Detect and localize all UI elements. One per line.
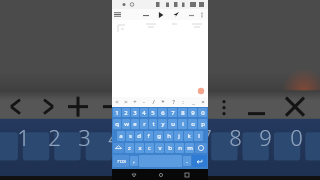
- button[interactable]: .: [183, 156, 191, 166]
- button[interactable]: Share: [170, 9, 181, 20]
- button[interactable]: >: [121, 97, 130, 107]
- staticText: ?: [172, 98, 175, 106]
- button[interactable]: Undo: [140, 9, 151, 20]
- button[interactable]: 8: [178, 108, 187, 117]
- staticText: 4: [108, 122, 121, 152]
- button[interactable]: r: [140, 119, 148, 129]
- button[interactable]: 6: [158, 108, 167, 117]
- staticText: s: [129, 132, 132, 140]
- button[interactable]: u: [168, 119, 177, 129]
- button[interactable]: *: [158, 97, 168, 107]
- button[interactable]: 7: [168, 108, 177, 117]
- button[interactable]: d: [135, 131, 143, 141]
- button[interactable]: i: [178, 119, 187, 129]
- staticText: 8: [229, 122, 242, 152]
- button[interactable]: l: [194, 131, 203, 141]
- staticText: t: [152, 120, 155, 128]
- button[interactable]: o: [188, 119, 197, 129]
- staticText: p: [201, 120, 205, 128]
- button[interactable]: g: [154, 131, 163, 141]
- staticText: 0: [201, 109, 205, 117]
- staticText: 4: [142, 109, 146, 117]
- button[interactable]: ×: [198, 97, 208, 107]
- staticText: z: [128, 144, 131, 152]
- button[interactable]: p: [198, 119, 207, 129]
- button[interactable]: y: [158, 119, 167, 129]
- button[interactable]: <: [112, 97, 121, 107]
- staticText: .: [186, 157, 188, 165]
- staticText: o: [191, 120, 195, 128]
- button[interactable]: a: [117, 131, 125, 141]
- button[interactable]: Shift: [113, 143, 124, 153]
- button[interactable]: -: [139, 97, 148, 107]
- button[interactable]: v: [155, 143, 164, 153]
- button[interactable]: 2: [122, 108, 130, 117]
- staticText: h: [167, 132, 171, 140]
- button[interactable]: t: [149, 119, 157, 129]
- button[interactable]: Home: [155, 169, 166, 180]
- button[interactable]: _: [188, 97, 198, 107]
- staticText: 7: [199, 122, 212, 152]
- button[interactable]: 1: [113, 108, 121, 117]
- staticText: k: [187, 132, 191, 140]
- staticText: <: [115, 98, 119, 106]
- button[interactable]: 3: [131, 108, 139, 117]
- button[interactable]: b: [165, 143, 174, 153]
- button[interactable]: ?123: [113, 155, 129, 167]
- button[interactable]: s: [126, 131, 134, 141]
- button[interactable]: j: [174, 131, 183, 141]
- staticText: b: [168, 144, 172, 152]
- staticText: 1: [17, 122, 30, 152]
- button[interactable]: x: [135, 143, 144, 153]
- button[interactable]: e: [131, 119, 139, 129]
- staticText: >: [124, 98, 128, 106]
- staticText: a: [119, 132, 123, 140]
- staticText: r: [143, 120, 146, 128]
- button[interactable]: Search: [186, 10, 196, 20]
- staticText: ?123: [117, 159, 126, 164]
- button[interactable]: :: [178, 97, 188, 107]
- button[interactable]: ,: [130, 156, 138, 166]
- button[interactable]: Menu: [112, 9, 123, 20]
- staticText: 7: [171, 109, 175, 117]
- button[interactable]: 5: [149, 108, 157, 117]
- button[interactable]: z: [125, 143, 134, 153]
- button[interactable]: c: [145, 143, 154, 153]
- button[interactable]: /: [148, 97, 158, 107]
- button[interactable]: Backspace: [195, 143, 207, 153]
- staticText: y: [161, 120, 165, 128]
- staticText: d: [137, 132, 141, 140]
- button[interactable]: k: [184, 131, 193, 141]
- staticText: /: [152, 98, 155, 106]
- staticText: 2: [48, 122, 61, 152]
- staticText: q: [115, 120, 119, 128]
- button[interactable]: Recents: [181, 169, 192, 180]
- staticText: g: [157, 132, 161, 140]
- button[interactable]: f: [144, 131, 153, 141]
- staticText: l: [198, 132, 200, 140]
- button[interactable]: m: [185, 143, 194, 153]
- button[interactable]: 0: [198, 108, 207, 117]
- button[interactable]: +: [130, 97, 139, 107]
- staticText: j: [178, 132, 180, 140]
- button[interactable]: 4: [140, 108, 148, 117]
- staticText: e: [133, 120, 137, 128]
- button[interactable]: Play: [155, 9, 166, 20]
- staticText: ,: [133, 157, 135, 165]
- button[interactable]: n: [175, 143, 184, 153]
- button[interactable]: More options: [196, 9, 207, 20]
- staticText: 9: [191, 109, 195, 117]
- staticText: f: [147, 132, 150, 140]
- button[interactable]: 9: [188, 108, 197, 117]
- button[interactable]: q: [113, 119, 121, 129]
- button[interactable]: Enter: [192, 155, 207, 167]
- staticText: w: [124, 120, 129, 128]
- staticText: 6: [161, 109, 165, 117]
- staticText: 3: [133, 109, 137, 117]
- button[interactable]: Back: [128, 169, 139, 180]
- button[interactable]: h: [164, 131, 173, 141]
- staticText: _: [192, 98, 195, 106]
- button[interactable]: ?: [168, 97, 178, 107]
- button[interactable]: w: [122, 119, 130, 129]
